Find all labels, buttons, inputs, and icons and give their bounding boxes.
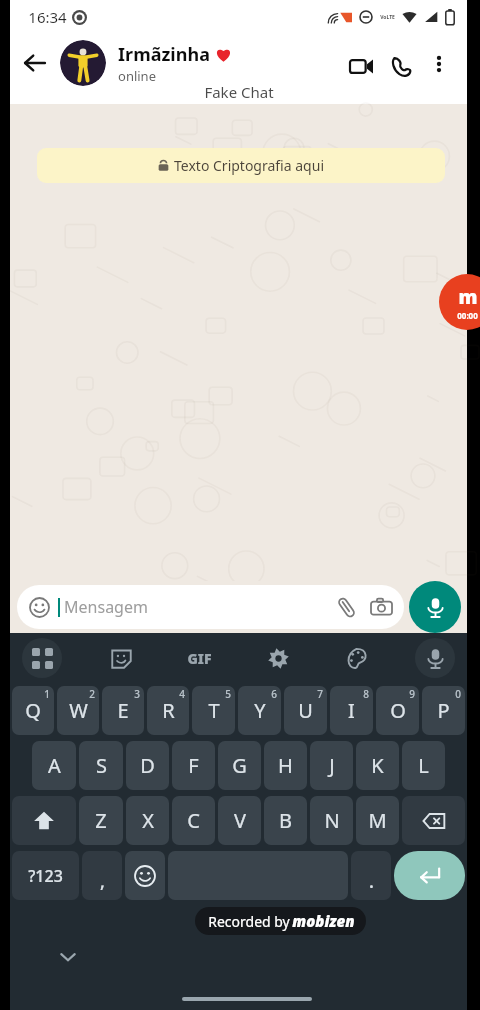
button[interactable]: T <box>192 686 235 735</box>
button[interactable]: Backspace <box>402 796 465 845</box>
staticText: Texto Criptografia aqui <box>174 156 324 175</box>
button[interactable]: D <box>126 741 169 790</box>
staticText: 3 <box>134 687 140 701</box>
button[interactable]: X <box>126 796 169 845</box>
button[interactable]: Z <box>79 796 123 845</box>
staticText: E <box>117 697 129 724</box>
staticText: Y <box>254 697 266 724</box>
staticText: VoLTE <box>380 14 395 21</box>
staticText: ?123 <box>28 865 63 887</box>
button[interactable]: C <box>172 796 215 845</box>
button[interactable]: Emoji <box>17 585 404 629</box>
button[interactable]: Irmãzinha <box>118 42 341 85</box>
staticText: 16:34 <box>28 7 67 27</box>
staticText: Z <box>95 807 107 834</box>
staticText: , <box>100 869 105 894</box>
staticText: 5 <box>225 687 231 701</box>
button[interactable]: R <box>147 686 189 735</box>
button[interactable]: I <box>330 686 373 735</box>
staticText: A <box>48 752 61 779</box>
button[interactable]: Apps <box>22 638 62 678</box>
staticText: Q <box>25 697 41 724</box>
staticText: D <box>140 752 155 779</box>
staticText: K <box>371 752 384 779</box>
button[interactable]: Stickers <box>101 638 141 678</box>
button[interactable]: Record voice message <box>409 581 461 633</box>
button[interactable]: E <box>102 686 144 735</box>
button[interactable]: Y <box>238 686 281 735</box>
button[interactable]: G <box>218 741 261 790</box>
staticText: 0 <box>455 687 461 701</box>
staticText: 7 <box>317 687 323 701</box>
staticText: Mensagem <box>64 596 148 618</box>
staticText: F <box>188 752 199 779</box>
button[interactable]: Attach <box>336 597 357 618</box>
button[interactable]: Recording widget <box>439 274 480 330</box>
staticText: P <box>437 697 450 724</box>
button[interactable]: Video call <box>341 46 381 86</box>
button[interactable]: . <box>351 851 391 900</box>
staticText: online <box>118 67 156 85</box>
button[interactable]: H <box>264 741 307 790</box>
staticText: . <box>369 869 374 894</box>
button[interactable]: GIF <box>179 638 219 678</box>
staticText: I <box>348 697 355 724</box>
button[interactable]: B <box>264 796 307 845</box>
button[interactable]: Q <box>12 686 54 735</box>
staticText: H <box>278 752 293 779</box>
button[interactable]: W <box>57 686 99 735</box>
button[interactable]: M <box>356 796 399 845</box>
staticText: 2 <box>89 687 95 701</box>
staticText: T <box>208 697 220 724</box>
button[interactable]: Texto Criptografia aqui <box>37 148 445 183</box>
button[interactable]: V <box>218 796 261 845</box>
staticText: U <box>298 697 313 724</box>
button[interactable]: O <box>376 686 419 735</box>
button[interactable]: ?123 <box>12 851 79 900</box>
button[interactable]: L <box>402 741 445 790</box>
staticText: B <box>279 807 292 834</box>
staticText: Recorded by <box>206 912 292 931</box>
button[interactable]: Emoji <box>29 597 50 618</box>
staticText: C <box>187 807 200 834</box>
button[interactable]: Settings <box>258 638 298 678</box>
staticText: GIF <box>187 649 212 668</box>
staticText: 00:00 <box>457 310 478 321</box>
button[interactable]: A <box>32 741 76 790</box>
button[interactable]: Voice call <box>381 46 421 86</box>
button[interactable]: Camera <box>371 597 392 618</box>
staticText: 4 <box>179 687 185 701</box>
staticText: V <box>234 807 246 834</box>
staticText: 9 <box>409 687 415 701</box>
button[interactable]: F <box>172 741 215 790</box>
staticText: m <box>458 284 478 310</box>
staticText: M <box>368 807 387 834</box>
button[interactable]: P <box>422 686 465 735</box>
staticText: X <box>142 807 154 834</box>
staticText: Irmãzinha <box>118 42 210 67</box>
button[interactable]: Shift <box>12 796 76 845</box>
button[interactable]: Enter <box>394 851 465 900</box>
staticText: R <box>162 697 175 724</box>
button[interactable]: Hide keyboard <box>50 939 86 975</box>
button[interactable]: S <box>79 741 123 790</box>
button[interactable]: , <box>82 851 122 900</box>
button[interactable]: Back <box>14 42 56 84</box>
button[interactable]: Profile photo <box>60 40 106 86</box>
staticText: 6 <box>271 687 277 701</box>
button[interactable]: N <box>310 796 353 845</box>
button[interactable]: Emoji <box>125 851 165 900</box>
button[interactable]: More options <box>421 46 457 82</box>
staticText: mobizen <box>292 911 355 931</box>
button[interactable]: U <box>284 686 327 735</box>
button[interactable]: J <box>310 741 353 790</box>
button[interactable]: Voice input <box>415 638 455 678</box>
staticText: G <box>232 752 247 779</box>
button[interactable]: Themes <box>336 638 376 678</box>
staticText: W <box>69 697 88 724</box>
staticText: J <box>329 752 335 779</box>
staticText: O <box>390 697 406 724</box>
staticText: 8 <box>363 687 369 701</box>
button[interactable]: K <box>356 741 399 790</box>
